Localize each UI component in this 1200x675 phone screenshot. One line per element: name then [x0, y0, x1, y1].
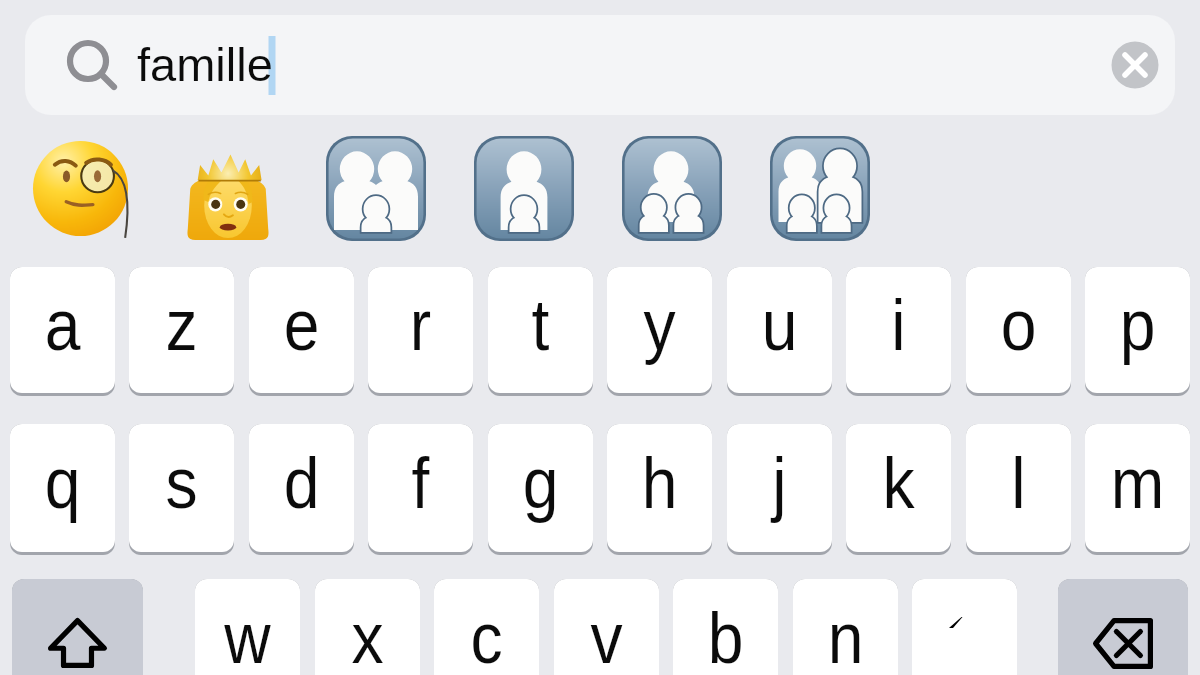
button[interactable]: t: [488, 267, 593, 393]
staticText: w: [224, 597, 271, 675]
button[interactable]: i: [846, 267, 951, 393]
button[interactable]: a: [10, 267, 115, 393]
staticText: g: [522, 442, 559, 524]
staticText: famille: [137, 38, 273, 91]
button[interactable]: e: [249, 267, 354, 393]
staticText: s: [165, 442, 198, 524]
staticText: n: [827, 597, 864, 675]
staticText: i: [891, 284, 906, 366]
staticText: q: [44, 442, 81, 524]
button[interactable]: Search emoji, famille: [25, 15, 1085, 115]
button[interactable]: j: [727, 424, 832, 552]
staticText: f: [411, 442, 430, 524]
button[interactable]: h: [607, 424, 712, 552]
button[interactable]: y: [607, 267, 712, 393]
staticText: y: [643, 284, 676, 366]
button[interactable]: p: [1085, 267, 1190, 393]
button[interactable]: w: [195, 579, 300, 675]
staticText: z: [165, 284, 198, 366]
staticText: e: [283, 284, 320, 366]
staticText: u: [761, 284, 798, 366]
staticText: l: [1011, 442, 1026, 524]
staticText: k: [882, 442, 915, 524]
staticText: c: [470, 597, 503, 675]
staticText: t: [531, 284, 550, 366]
button[interactable]: r: [368, 267, 473, 393]
button[interactable]: b: [673, 579, 778, 675]
staticText: a: [44, 284, 81, 366]
staticText: r: [409, 284, 431, 366]
button[interactable]: Shift: [12, 579, 143, 675]
button[interactable]: l: [966, 424, 1071, 552]
button[interactable]: g: [488, 424, 593, 552]
button[interactable]: u: [727, 267, 832, 393]
button[interactable]: Backspace: [1058, 579, 1188, 675]
button[interactable]: Family: two adults, two children emoji: [770, 136, 870, 241]
button[interactable]: Family emoji: [326, 136, 426, 241]
staticText: p: [1119, 284, 1156, 366]
button[interactable]: v: [554, 579, 659, 675]
staticText: b: [707, 597, 744, 675]
staticText: j: [772, 442, 787, 524]
button[interactable]: Family: adult, child emoji: [474, 136, 574, 241]
button[interactable]: Clear search: [1101, 31, 1169, 99]
staticText: o: [1000, 284, 1037, 366]
staticText: m: [1111, 442, 1164, 524]
button[interactable]: o: [966, 267, 1071, 393]
button[interactable]: Face with monocle emoji: [33, 141, 128, 246]
button[interactable]: c: [434, 579, 539, 675]
button[interactable]: q: [10, 424, 115, 552]
staticText: x: [351, 597, 384, 675]
button[interactable]: s: [129, 424, 234, 552]
staticText: d: [283, 442, 320, 524]
staticText: h: [641, 442, 678, 524]
button[interactable]: f: [368, 424, 473, 552]
button[interactable]: Family: adult, two children emoji: [622, 136, 722, 241]
button[interactable]: m: [1085, 424, 1190, 552]
staticText: v: [590, 597, 623, 675]
button[interactable]: z: [129, 267, 234, 393]
button[interactable]: Princess emoji: [187, 145, 269, 240]
button[interactable]: x: [315, 579, 420, 675]
button[interactable]: k: [846, 424, 951, 552]
button[interactable]: d: [249, 424, 354, 552]
button[interactable]: Acute accent: [912, 579, 1017, 675]
button[interactable]: n: [793, 579, 898, 675]
